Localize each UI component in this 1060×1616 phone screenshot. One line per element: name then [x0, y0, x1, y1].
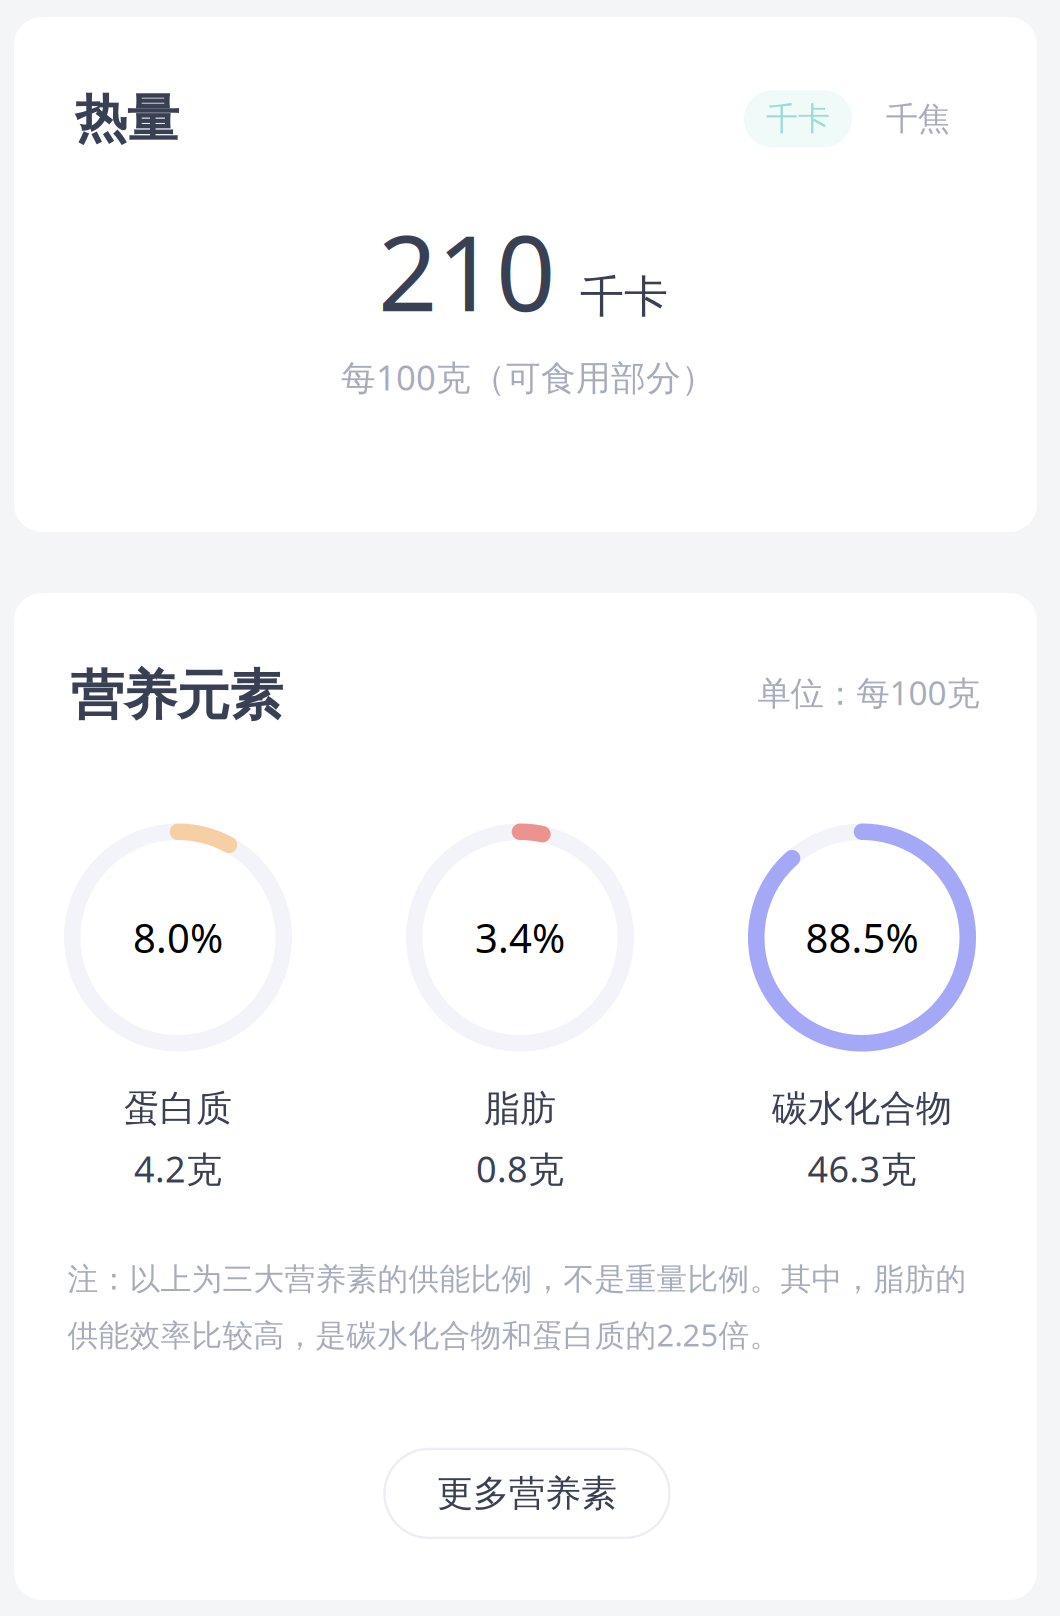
- button[interactable]: 更多营养素: [384, 1449, 669, 1538]
- staticText: 营养元素: [70, 663, 282, 728]
- staticText: 0.8克: [476, 1145, 564, 1192]
- staticText: 88.5%: [805, 911, 918, 964]
- staticText: 210: [378, 202, 555, 340]
- staticText: 碳水化合物: [772, 1086, 952, 1131]
- staticText: 4.2克: [134, 1145, 222, 1192]
- staticText: 8.0%: [133, 911, 223, 964]
- staticText: 3.4%: [475, 911, 565, 964]
- staticText: 千卡: [766, 99, 830, 139]
- staticText: 热量: [75, 87, 179, 151]
- staticText: 单位：每100克: [757, 670, 979, 714]
- staticText: 脂肪: [484, 1086, 556, 1131]
- staticText: 注：以上为三大营养素的供能比例，不是重量比例。其中，脂肪的供能效率比较高，是碳水…: [67, 1260, 966, 1355]
- staticText: 46.3克: [807, 1145, 916, 1192]
- staticText: 每100克（可食用部分）: [341, 354, 716, 400]
- button[interactable]: 千焦: [852, 90, 950, 148]
- staticText: 千卡: [580, 270, 668, 324]
- staticText: 千焦: [886, 99, 950, 139]
- staticText: 更多营养素: [437, 1471, 617, 1515]
- button[interactable]: 千卡: [744, 90, 852, 148]
- staticText: 蛋白质: [124, 1086, 232, 1131]
